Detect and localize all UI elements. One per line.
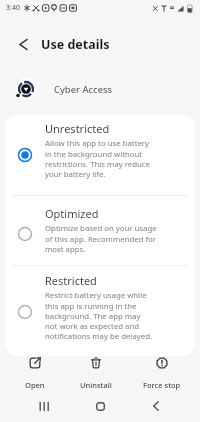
staticText: Uninstall <box>80 380 112 390</box>
staticText: Use details <box>41 36 110 53</box>
staticText: Optimized <box>45 206 99 221</box>
button[interactable] <box>72 390 128 422</box>
button[interactable]: Restricted <box>5 266 195 356</box>
button[interactable] <box>16 390 72 422</box>
button[interactable]: Force stop <box>132 356 192 390</box>
staticText: Force stop <box>143 380 181 390</box>
staticText: Allow this app to use battery in the bac… <box>45 138 151 179</box>
staticText: Restrict battery usage while this app is… <box>45 290 153 341</box>
staticText: Open <box>25 380 45 390</box>
button[interactable] <box>128 390 184 422</box>
staticText: Cyber Access <box>54 83 113 96</box>
staticText: Unrestricted <box>45 121 110 136</box>
staticText: 3:40 <box>6 3 20 13</box>
button[interactable] <box>12 33 34 55</box>
button[interactable]: Unrestricted <box>5 115 195 195</box>
staticText: Optimize based on your usage of this app… <box>45 223 157 254</box>
button[interactable]: Uninstall <box>60 356 132 390</box>
staticText: Restricted <box>45 273 97 288</box>
button[interactable]: Optimized <box>5 196 195 265</box>
button[interactable]: Open <box>10 356 60 390</box>
